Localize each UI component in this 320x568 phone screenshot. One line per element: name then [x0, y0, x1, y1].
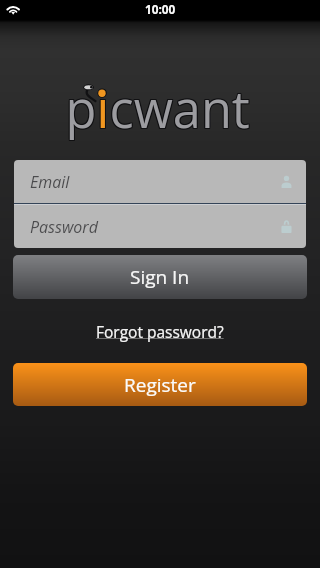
button[interactable]: Email — [14, 160, 306, 203]
button[interactable]: Password — [14, 205, 306, 248]
staticText: Password — [30, 216, 98, 238]
staticText: Sign In — [130, 264, 190, 290]
button[interactable]: Register — [13, 363, 307, 406]
staticText: 10:00 — [145, 1, 176, 17]
staticText: Register — [124, 372, 196, 398]
button[interactable]: Forgot password? — [90, 318, 230, 345]
staticText: Email — [30, 171, 70, 193]
button[interactable]: Sign In — [13, 255, 307, 299]
staticText: Forgot password? — [96, 321, 224, 342]
